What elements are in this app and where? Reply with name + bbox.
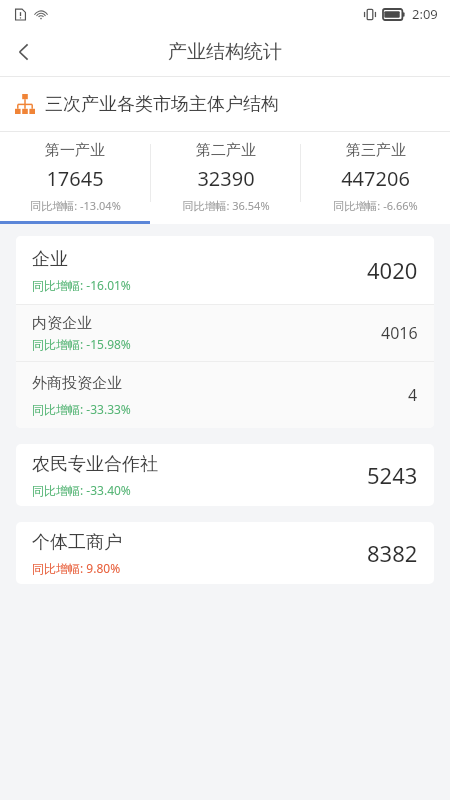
staticText: 同比增幅: -33.40% (32, 482, 131, 498)
staticText: 同比增幅: 9.80% (32, 560, 121, 576)
staticText: 三次产业各类市场主体户结构 (45, 93, 279, 116)
button[interactable]: 第一产业 (0, 132, 150, 213)
staticText: 个体工商户 (32, 531, 122, 554)
staticText: 同比增幅: -6.66% (333, 198, 418, 213)
staticText: 17645 (46, 165, 104, 192)
button[interactable]: 第三产业 (301, 132, 450, 213)
button[interactable]: 个体工商户 (16, 522, 434, 584)
staticText: 外商投资企业 (32, 374, 122, 393)
staticText: 同比增幅: -33.33% (32, 401, 131, 417)
button[interactable]: Back (0, 28, 48, 76)
button[interactable]: 第二产业 (151, 132, 300, 213)
staticText: 447206 (341, 165, 410, 192)
staticText: 第一产业 (45, 141, 105, 160)
button[interactable]: 外商投资企业 (16, 362, 434, 428)
staticText: 8382 (367, 538, 418, 568)
staticText: 同比增幅: -15.98% (32, 336, 131, 352)
staticText: 4016 (381, 322, 418, 344)
staticText: 第三产业 (346, 141, 406, 160)
button[interactable]: 企业 (16, 236, 434, 304)
staticText: 2:09 (412, 5, 438, 23)
staticText: 第二产业 (196, 141, 256, 160)
staticText: 内资企业 (32, 314, 92, 333)
staticText: 企业 (32, 248, 68, 271)
staticText: 5243 (367, 460, 418, 490)
staticText: 4020 (367, 255, 418, 285)
staticText: 农民专业合作社 (32, 453, 158, 476)
button[interactable]: 内资企业 (16, 305, 434, 361)
staticText: 产业结构统计 (168, 40, 282, 64)
staticText: 同比增幅: 36.54% (182, 198, 270, 213)
staticText: 同比增幅: -16.01% (32, 277, 131, 293)
staticText: 32390 (197, 165, 255, 192)
staticText: 4 (408, 384, 418, 406)
button[interactable]: 农民专业合作社 (16, 444, 434, 506)
staticText: 同比增幅: -13.04% (30, 198, 121, 213)
